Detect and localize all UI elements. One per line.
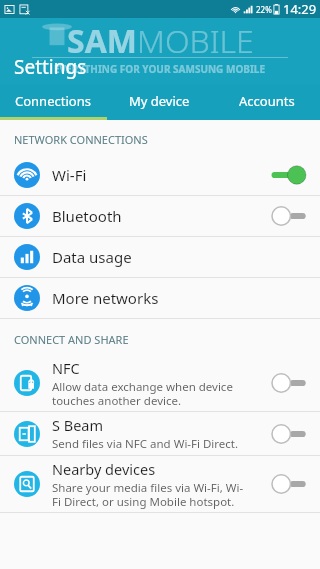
button[interactable]: My device bbox=[106, 85, 213, 117]
staticText: SAM bbox=[67, 19, 137, 63]
staticText: Settings bbox=[14, 54, 87, 80]
button[interactable]: NFC bbox=[0, 355, 320, 411]
staticText: My device bbox=[129, 92, 190, 110]
staticText: Send files via NFC and Wi-Fi Direct. bbox=[52, 436, 239, 452]
button[interactable]: S Beam bbox=[0, 412, 320, 455]
staticText: 14:29 bbox=[283, 0, 317, 18]
staticText: Bluetooth bbox=[52, 206, 122, 226]
staticText: 22% bbox=[256, 4, 272, 15]
button[interactable]: Toggle off bbox=[270, 205, 308, 227]
button[interactable]: Data usage bbox=[0, 237, 320, 277]
staticText: Share your media files via Wi-Fi, Wi- Fi… bbox=[52, 480, 244, 509]
staticText: More networks bbox=[52, 288, 159, 308]
button[interactable]: Connections bbox=[0, 85, 106, 117]
staticText: CONNECT AND SHARE bbox=[14, 332, 129, 347]
button[interactable]: Bluetooth bbox=[0, 196, 320, 236]
staticText: Accounts bbox=[239, 92, 295, 110]
staticText: S Beam bbox=[52, 415, 104, 435]
staticText: Connections bbox=[15, 92, 91, 110]
button[interactable]: Accounts bbox=[213, 85, 320, 117]
staticText: NETWORK CONNECTIONS bbox=[14, 132, 148, 147]
button[interactable]: Wi-Fi bbox=[0, 155, 320, 195]
staticText: MOBILE bbox=[137, 19, 254, 63]
staticText: NFC bbox=[52, 358, 80, 378]
staticText: Allow data exchange when device touches … bbox=[52, 379, 233, 408]
staticText: Nearby devices bbox=[52, 459, 156, 479]
button[interactable]: More networks bbox=[0, 278, 320, 318]
button[interactable]: Nearby devices bbox=[0, 456, 320, 512]
staticText: Wi-Fi bbox=[52, 165, 87, 185]
button[interactable]: Toggle on bbox=[270, 164, 308, 186]
button[interactable]: Toggle off bbox=[270, 423, 308, 445]
staticText: EVERYTHING FOR YOUR SAMSUNG MOBILE bbox=[54, 62, 266, 76]
button[interactable]: Toggle off bbox=[270, 372, 308, 394]
button[interactable]: Toggle off bbox=[270, 473, 308, 495]
staticText: Data usage bbox=[52, 247, 132, 267]
